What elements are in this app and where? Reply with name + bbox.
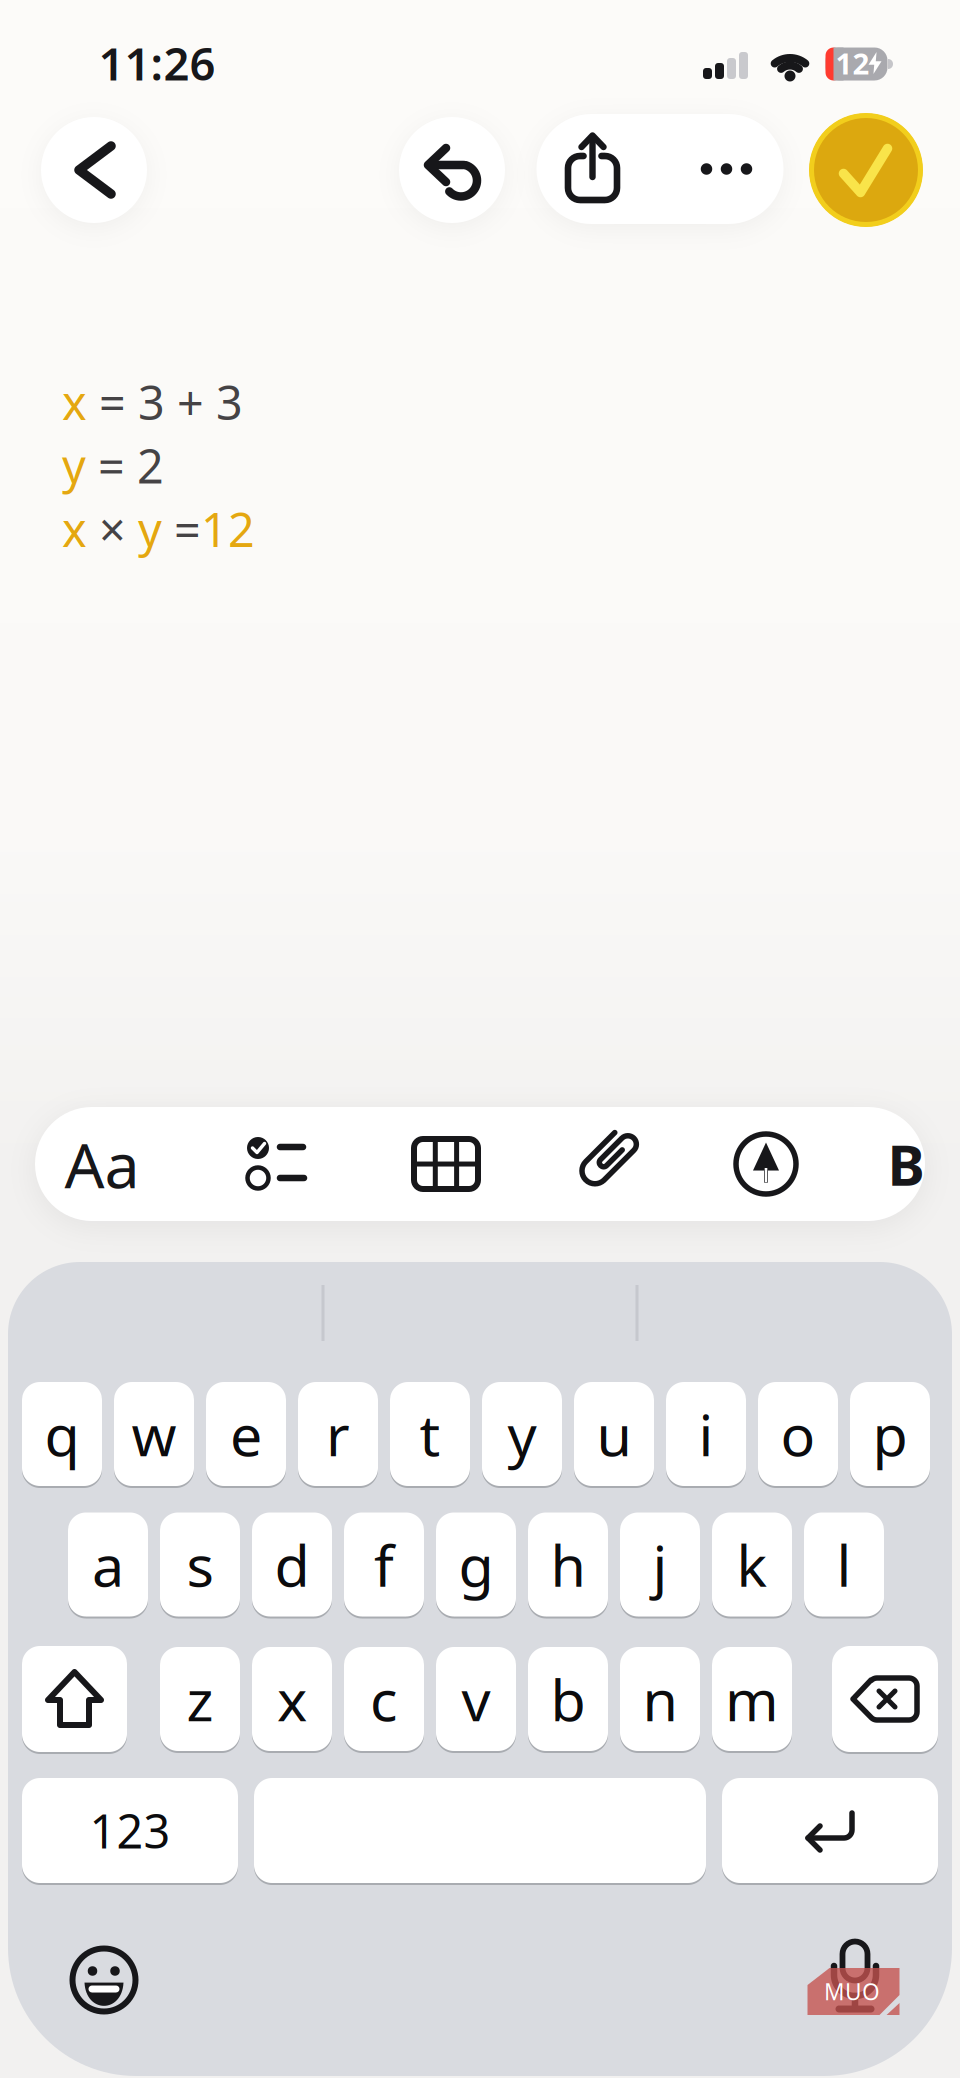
staticText: =	[162, 498, 201, 560]
button[interactable]: t	[390, 1382, 470, 1486]
staticText: y	[507, 1396, 536, 1472]
button[interactable]: Format	[37, 1107, 167, 1221]
staticText: m	[725, 1661, 779, 1737]
staticText: 12	[835, 43, 869, 82]
staticText: e	[230, 1396, 262, 1472]
button[interactable]: j	[620, 1512, 700, 1616]
staticText: u	[596, 1396, 631, 1472]
staticText: t	[419, 1396, 440, 1472]
staticText: l	[836, 1526, 851, 1602]
staticText: x	[62, 371, 87, 433]
button[interactable]: l	[804, 1512, 884, 1616]
button[interactable]: Numbers	[22, 1778, 238, 1883]
button[interactable]: v	[436, 1647, 516, 1751]
staticText: 123	[89, 1799, 170, 1861]
button[interactable]: n	[620, 1647, 700, 1751]
staticText: p	[872, 1396, 907, 1472]
staticText: ×	[87, 498, 138, 560]
staticText: MUO	[824, 1976, 880, 2006]
button[interactable]: q	[22, 1382, 102, 1486]
staticText: b	[550, 1661, 585, 1737]
staticText: Aa	[64, 1122, 139, 1206]
staticText: g	[458, 1526, 493, 1602]
button[interactable]: m	[712, 1647, 792, 1751]
button[interactable]: Share	[542, 114, 642, 224]
button[interactable]: Done	[809, 113, 922, 226]
button[interactable]: x	[252, 1647, 332, 1751]
staticText: q	[44, 1396, 79, 1472]
staticText: y	[62, 434, 86, 496]
button[interactable]: Markup	[706, 1107, 826, 1221]
staticText: k	[736, 1526, 767, 1602]
staticText: s	[186, 1526, 213, 1602]
staticText: 12	[201, 498, 255, 560]
button[interactable]: c	[344, 1647, 424, 1751]
button[interactable]: Delete	[832, 1646, 938, 1752]
staticText: c	[370, 1661, 398, 1737]
staticText: v	[461, 1661, 490, 1737]
staticText: a	[92, 1526, 124, 1602]
button[interactable]: z	[160, 1647, 240, 1751]
button[interactable]: h	[528, 1512, 608, 1616]
button[interactable]: k	[712, 1512, 792, 1616]
staticText: h	[550, 1526, 585, 1602]
staticText: j	[652, 1526, 667, 1602]
button[interactable]: Attach	[567, 1123, 647, 1203]
button[interactable]: Shift	[22, 1646, 127, 1752]
button[interactable]: s	[160, 1512, 240, 1616]
button[interactable]: y	[482, 1382, 562, 1486]
staticText: i	[698, 1396, 713, 1472]
button[interactable]: Dictate	[795, 1920, 915, 2030]
staticText: w	[131, 1396, 176, 1472]
button[interactable]: b	[528, 1647, 608, 1751]
button[interactable]: u	[574, 1382, 654, 1486]
staticText: = 2	[86, 434, 164, 496]
staticText: r	[326, 1396, 350, 1472]
button[interactable]: a	[68, 1512, 148, 1616]
button[interactable]: o	[758, 1382, 838, 1486]
button[interactable]: Table	[386, 1107, 506, 1221]
staticText: B	[887, 1127, 924, 1201]
staticText: n	[642, 1661, 677, 1737]
button[interactable]: Return	[722, 1778, 938, 1883]
button[interactable]: p	[850, 1382, 930, 1486]
button[interactable]: e	[206, 1382, 286, 1486]
button[interactable]: Back	[41, 117, 147, 223]
button[interactable]: i	[666, 1382, 746, 1486]
staticText: d	[274, 1526, 309, 1602]
button[interactable]: d	[252, 1512, 332, 1616]
button[interactable]: w	[114, 1382, 194, 1486]
button[interactable]: g	[436, 1512, 516, 1616]
staticText: y	[138, 498, 162, 560]
button[interactable]: More	[676, 114, 776, 224]
staticText: x	[277, 1661, 307, 1737]
staticText: f	[374, 1526, 394, 1602]
staticText: x	[62, 498, 87, 560]
staticText: o	[780, 1396, 815, 1472]
button[interactable]: Bold	[871, 1107, 941, 1221]
staticText: 11:26	[98, 33, 215, 93]
staticText: = 3 + 3	[87, 371, 243, 433]
button[interactable]: Undo	[399, 117, 505, 223]
button[interactable]: Checklist	[216, 1107, 336, 1221]
button[interactable]: Emoji	[64, 1940, 144, 2020]
button[interactable]: f	[344, 1512, 424, 1616]
button[interactable]: Space	[254, 1778, 706, 1883]
button[interactable]: r	[298, 1382, 378, 1486]
staticText: z	[186, 1661, 213, 1737]
